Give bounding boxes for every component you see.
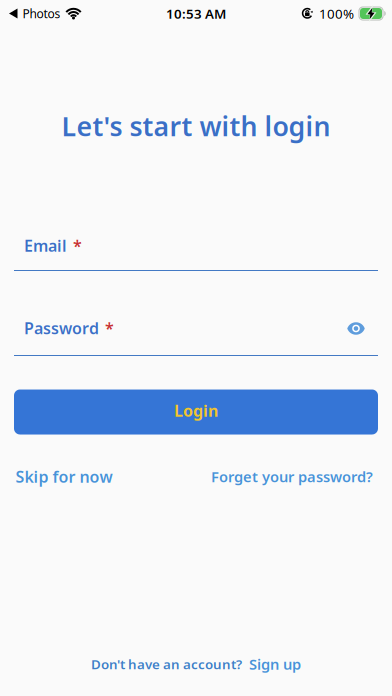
staticText: Skip for now bbox=[15, 466, 112, 487]
staticText: Password bbox=[24, 317, 99, 339]
staticText: Login bbox=[174, 400, 218, 421]
staticText: Photos bbox=[22, 5, 60, 21]
staticText: 10:53 AM bbox=[166, 5, 226, 22]
staticText: 100% bbox=[319, 5, 354, 22]
staticText: Email bbox=[24, 235, 67, 256]
staticText: Don't have an account? bbox=[91, 655, 242, 673]
button[interactable]: Forget your password? bbox=[211, 467, 373, 486]
button[interactable]: Password bbox=[0, 303, 392, 359]
staticText: Sign up bbox=[249, 654, 301, 674]
staticText: * bbox=[105, 317, 114, 339]
staticText: Let's start with login bbox=[61, 108, 330, 144]
button[interactable]: Skip for now bbox=[15, 466, 112, 487]
button[interactable]: Login bbox=[14, 389, 378, 434]
button[interactable] bbox=[347, 322, 365, 335]
staticText: Forget your password? bbox=[211, 467, 373, 486]
button[interactable]: Email bbox=[0, 218, 392, 274]
button[interactable]: Sign up bbox=[249, 654, 301, 674]
staticText: * bbox=[73, 235, 82, 256]
